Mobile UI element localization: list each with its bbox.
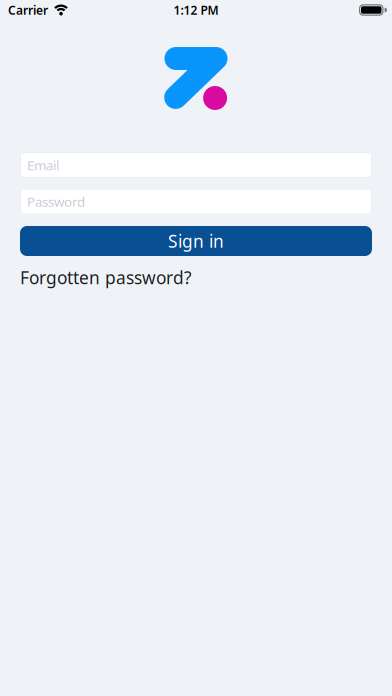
staticText: 1:12 PM [173,2,218,18]
button[interactable]: Password [20,188,372,214]
button[interactable]: Sign in [20,226,372,256]
staticText: Email [27,156,59,174]
button[interactable]: Forgotten password? [20,266,372,289]
button[interactable]: Email [20,152,372,178]
staticText: Carrier [8,2,48,18]
staticText: Password [27,193,85,210]
staticText: Forgotten password? [20,266,192,289]
staticText: Sign in [168,229,224,252]
